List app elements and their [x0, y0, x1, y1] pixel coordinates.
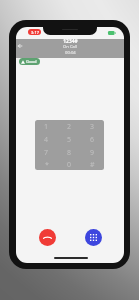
staticText: 00:04 — [65, 50, 76, 56]
staticText: 5 — [67, 135, 72, 145]
button[interactable]: 3 — [81, 120, 104, 133]
staticText: 1 — [44, 122, 49, 132]
staticText: 1234# — [63, 38, 78, 45]
staticText: 3 — [90, 122, 95, 132]
staticText: On Call — [63, 44, 78, 50]
staticText: Good — [26, 59, 37, 65]
button[interactable]: * — [35, 159, 58, 170]
staticText: 6 — [90, 135, 95, 145]
button[interactable]: Good — [19, 58, 40, 65]
button[interactable]: 5 — [58, 133, 81, 146]
staticText: 2 — [67, 122, 72, 132]
staticText: 8 — [67, 148, 72, 158]
button[interactable]: 4 — [35, 133, 58, 146]
button[interactable]: Back — [16, 40, 25, 51]
staticText: # — [90, 160, 95, 170]
button[interactable]: 6 — [81, 133, 104, 146]
button[interactable]: 0 — [58, 159, 81, 170]
button[interactable]: 8 — [58, 146, 81, 159]
staticText: 7 — [44, 148, 49, 158]
button[interactable]: Show keypad — [85, 229, 102, 246]
staticText: 9 — [90, 148, 95, 158]
button[interactable]: # — [81, 159, 104, 170]
button[interactable]: 7 — [35, 146, 58, 159]
button[interactable]: 1 — [35, 120, 58, 133]
button[interactable]: 9 — [81, 146, 104, 159]
staticText: 3:17 — [31, 30, 39, 35]
button[interactable]: 3:17 — [28, 29, 41, 35]
staticText: 4 — [44, 135, 49, 145]
staticText: * — [45, 160, 49, 170]
button[interactable]: 2 — [58, 120, 81, 133]
staticText: 0 — [67, 160, 72, 170]
button[interactable]: End call — [39, 229, 56, 246]
